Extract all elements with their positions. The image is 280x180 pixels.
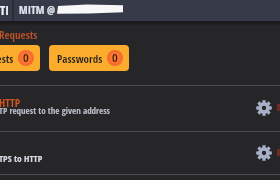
staticText: 0 <box>112 51 118 65</box>
button[interactable]: Requests <box>0 45 40 71</box>
staticText: TI <box>0 2 9 18</box>
staticText: HTTP <box>0 95 21 110</box>
staticText: Passwords <box>57 51 103 66</box>
staticText: 0 <box>23 51 29 65</box>
button[interactable]: Settings <box>248 100 280 116</box>
staticText: MITM @ <box>19 2 55 17</box>
staticText: Requests <box>0 27 38 42</box>
button[interactable]: TPS to HTTP <box>0 132 280 174</box>
staticText: TPS to HTTP <box>0 152 43 165</box>
button[interactable]: Settings <box>248 145 280 161</box>
staticText: Requests <box>0 51 14 66</box>
staticText: TP request to the given address <box>0 104 110 116</box>
button[interactable]: Passwords <box>49 45 129 71</box>
button[interactable]: HTTP <box>0 86 280 131</box>
